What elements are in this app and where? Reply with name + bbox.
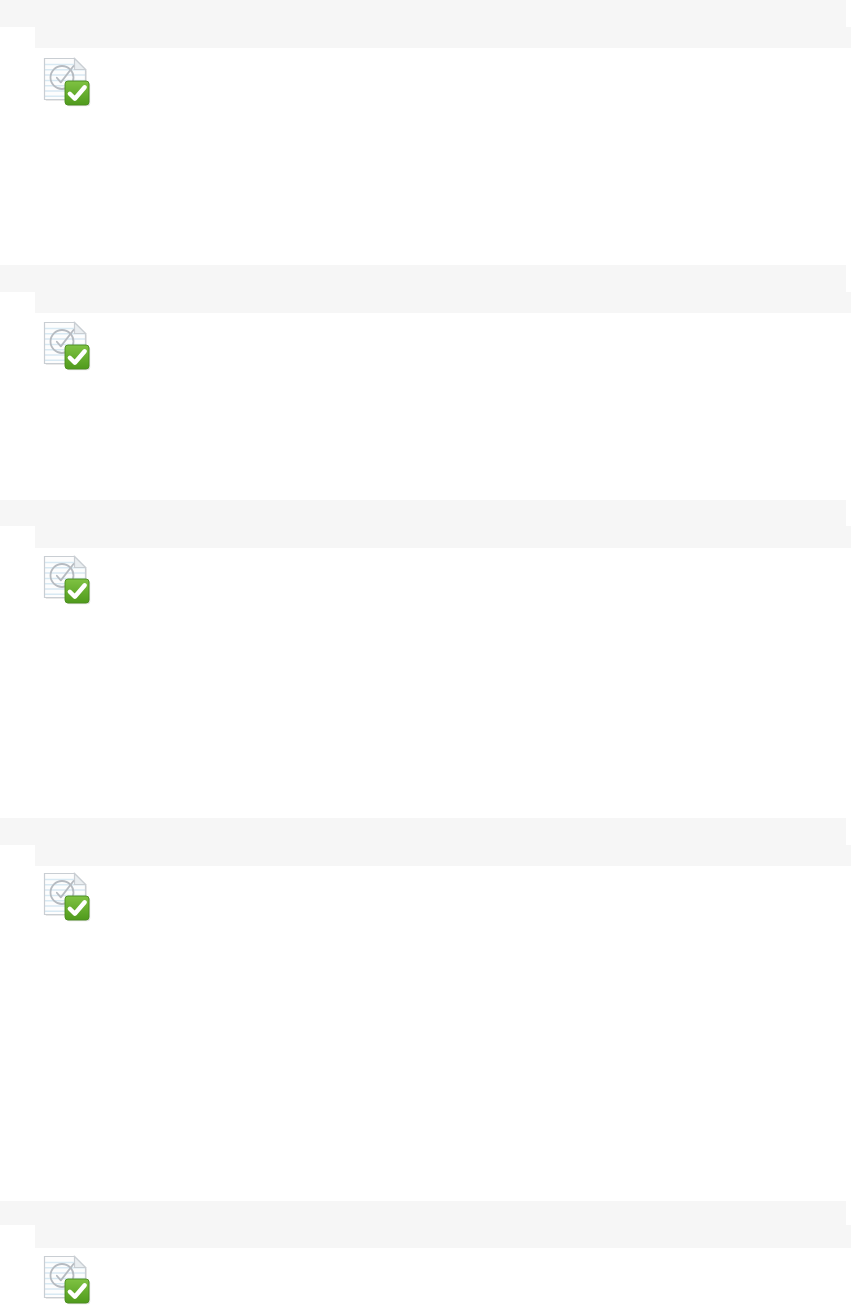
button[interactable]: Completed task document [43,321,91,369]
button[interactable]: Completed task document [43,872,91,920]
button[interactable]: Completed task document [43,555,91,603]
button[interactable]: Completed task document [43,57,91,105]
button[interactable]: Completed task document [43,1255,91,1303]
